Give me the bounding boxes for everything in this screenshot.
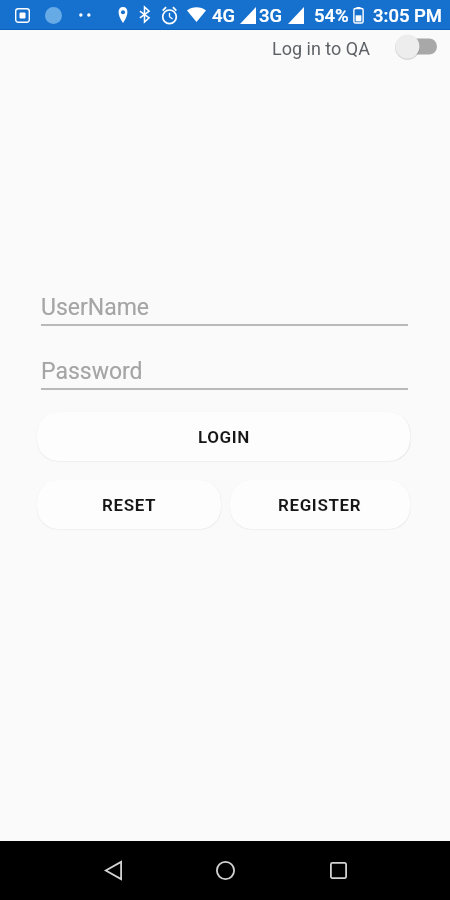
button[interactable]: REGISTER [230,480,410,529]
button[interactable]: RESET [37,480,221,529]
button[interactable]: Home [201,846,249,894]
staticText: 3:05 PM [373,5,443,27]
button[interactable]: Back [89,846,137,894]
button[interactable]: Log in to QA [264,31,444,58]
staticText: 54% [314,5,349,27]
button[interactable]: LOGIN [37,412,410,461]
staticText: LOGIN [198,427,250,447]
staticText: 3G [259,5,283,27]
staticText: REGISTER [278,495,362,515]
staticText: RESET [102,495,157,515]
staticText: UserName [41,294,150,321]
button[interactable]: Log in to QA toggle [392,33,444,60]
button[interactable]: Recent apps [314,846,362,894]
staticText: 4G [212,5,236,27]
staticText: Password [41,358,143,385]
staticText: Log in to QA [272,38,370,59]
